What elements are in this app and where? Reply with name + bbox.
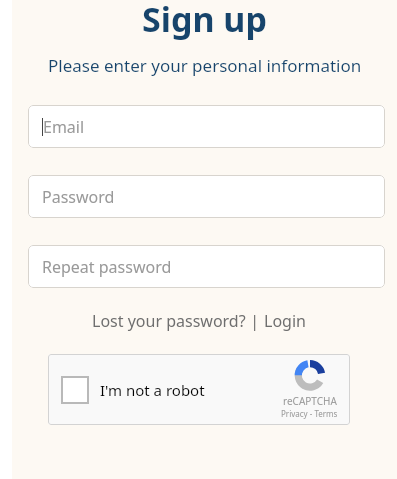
button[interactable]: Repeat password: [28, 245, 385, 288]
button[interactable]: Lost your password?: [92, 310, 246, 332]
staticText: I'm not a robot: [100, 380, 205, 400]
button[interactable]: Email: [28, 105, 385, 148]
staticText: Password: [42, 186, 115, 208]
staticText: Repeat password: [42, 256, 172, 278]
button[interactable]: Login: [264, 310, 306, 332]
staticText: Email: [43, 116, 85, 138]
staticText: Please enter your personal information: [48, 54, 362, 77]
button[interactable]: I'm not a robot: [61, 376, 89, 404]
staticText: reCAPTCHA: [283, 394, 337, 408]
staticText: Sign up: [142, 0, 267, 42]
staticText: Privacy - Terms: [281, 408, 338, 419]
button[interactable]: Password: [28, 175, 385, 218]
staticText: |: [246, 310, 264, 332]
